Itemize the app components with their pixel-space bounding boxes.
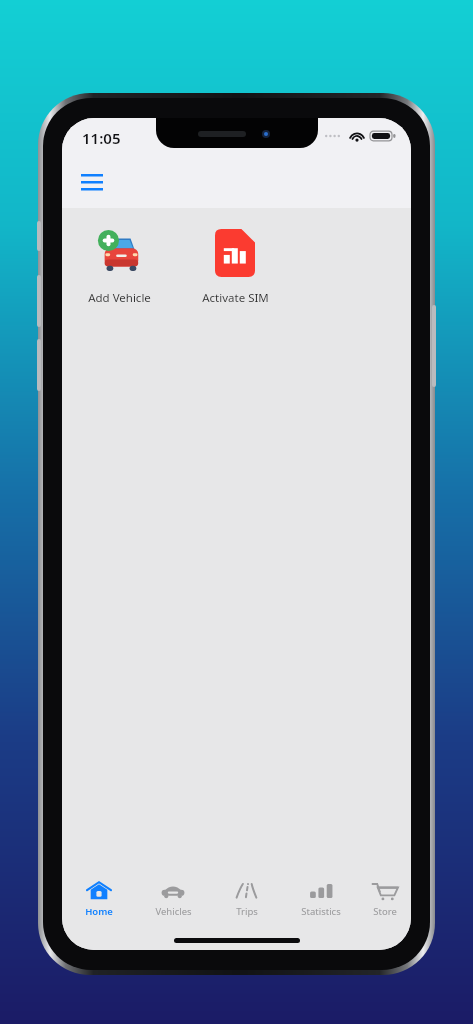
staticText: Add Vehicle <box>88 290 151 306</box>
staticText: Vehicles <box>155 905 192 918</box>
button[interactable]: Vehicles <box>136 878 210 920</box>
staticText: Trips <box>236 905 258 918</box>
button[interactable]: Home <box>62 878 136 920</box>
button[interactable]: Statistics <box>284 878 358 920</box>
staticText: Statistics <box>301 905 341 918</box>
staticText: Home <box>85 905 113 918</box>
staticText: Activate SIM <box>202 290 269 306</box>
staticText: Store <box>373 905 397 918</box>
button[interactable]: Trips <box>210 878 284 920</box>
button[interactable]: Activate SIM <box>177 220 293 312</box>
button[interactable]: Store <box>358 878 411 920</box>
staticText: 11:05 <box>82 128 121 148</box>
button[interactable]: Add Vehicle <box>62 220 177 312</box>
button[interactable]: Menu <box>70 160 114 204</box>
